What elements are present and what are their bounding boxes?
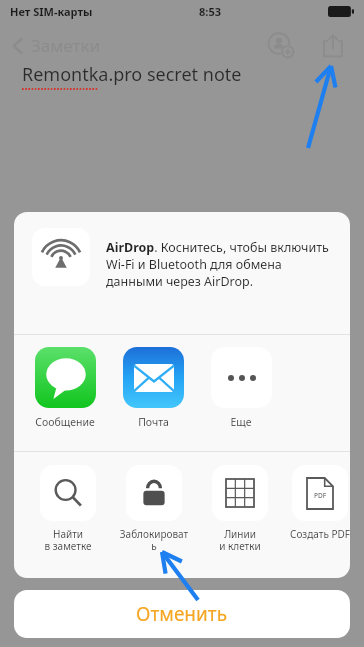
staticText: Заметки bbox=[31, 34, 101, 57]
button[interactable]: Найти в заметке bbox=[32, 465, 104, 553]
button[interactable]: Share bbox=[316, 28, 350, 62]
staticText: Найти в заметке bbox=[44, 527, 92, 553]
staticText: Еще bbox=[230, 415, 252, 429]
button[interactable]: Сообщение bbox=[32, 347, 98, 429]
staticText: 8:53 bbox=[199, 4, 221, 19]
staticText: Сообщение bbox=[35, 415, 95, 429]
button[interactable]: AirDrop. Коснитесь, чтобы включить Wi-Fi… bbox=[14, 212, 350, 334]
button[interactable]: Почта bbox=[120, 347, 186, 429]
button[interactable]: Add people bbox=[264, 28, 298, 62]
staticText: Линии и клетки bbox=[219, 527, 261, 553]
staticText: Отменить bbox=[136, 601, 228, 627]
staticText: Заблокировать bbox=[118, 527, 190, 553]
staticText: Нет SIM-карты bbox=[10, 4, 93, 19]
button[interactable]: PDF bbox=[290, 465, 350, 541]
staticText: Создать PDF bbox=[290, 527, 350, 541]
staticText: AirDrop. Коснитесь, чтобы включить Wi-Fi… bbox=[106, 239, 334, 290]
staticText: PDF bbox=[314, 491, 327, 500]
button[interactable]: Еще bbox=[208, 347, 274, 429]
button[interactable]: Линии и клетки bbox=[204, 465, 276, 553]
staticText: Почта bbox=[138, 415, 169, 429]
staticText: Remontka.pro secret note bbox=[22, 62, 242, 87]
button[interactable]: Заблокировать bbox=[118, 465, 190, 553]
button[interactable]: Отменить bbox=[14, 590, 350, 638]
